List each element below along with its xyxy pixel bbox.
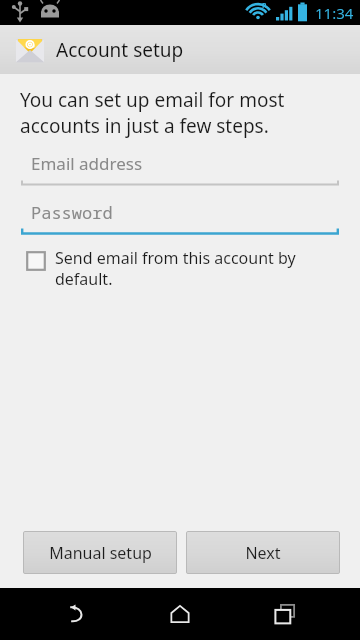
button[interactable]: Email address (21, 152, 339, 187)
staticText: 11:34 (315, 3, 354, 23)
staticText: Password (31, 201, 113, 224)
staticText: Manual setup (49, 542, 152, 564)
staticText: Email address (31, 152, 143, 175)
button[interactable]: Manual setup (23, 531, 177, 574)
staticText: Account setup (56, 37, 184, 63)
button[interactable]: Next (186, 531, 340, 574)
staticText: Next (245, 542, 281, 564)
staticText: Send email from this account by default. (55, 247, 296, 290)
button[interactable]: Home (150, 588, 210, 640)
staticText: You can set up email for most accounts i… (20, 87, 285, 139)
button[interactable]: Password (21, 201, 339, 236)
button[interactable]: Send email from this account by default (26, 247, 338, 290)
button[interactable]: Recent apps (255, 588, 315, 640)
other: Send email from this account by default (26, 251, 46, 271)
button[interactable]: Back (45, 588, 105, 640)
staticText: R (262, 1, 267, 11)
